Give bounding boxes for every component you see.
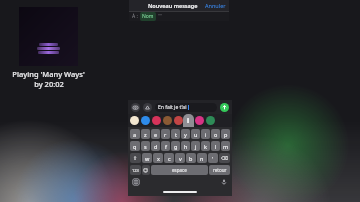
button[interactable]: Change language [132, 178, 140, 186]
staticText: o [214, 131, 218, 138]
staticText: Nom [142, 13, 154, 20]
staticText: "" [158, 13, 163, 20]
staticText: i [187, 116, 190, 126]
button[interactable]: App [130, 116, 139, 125]
staticText: Annuler [205, 2, 226, 9]
button[interactable]: c [164, 153, 174, 163]
button[interactable]: j [191, 141, 200, 151]
button[interactable]: q [130, 141, 140, 151]
button[interactable]: d [151, 141, 160, 151]
button[interactable]: Camera [131, 103, 140, 112]
staticText: retour [213, 167, 227, 173]
staticText: m [223, 143, 229, 150]
button[interactable]: À : [129, 12, 229, 21]
button[interactable]: w [142, 153, 152, 163]
staticText: l [215, 143, 217, 150]
button[interactable]: o [211, 129, 220, 139]
button[interactable]: g [171, 141, 180, 151]
button[interactable]: ' [208, 153, 218, 163]
staticText: f [165, 143, 167, 150]
staticText: En fait je t'ai [158, 104, 187, 111]
button[interactable]: En fait je t'ai [155, 103, 217, 112]
staticText: Playing 'Many Ways' [12, 69, 85, 79]
button[interactable]: ☺ [142, 165, 150, 175]
button[interactable]: ⌫ [219, 153, 230, 163]
button[interactable]: iMessage apps [183, 114, 194, 127]
staticText: p [224, 131, 228, 138]
button[interactable]: App [195, 116, 204, 125]
staticText: x [157, 155, 160, 162]
staticText: u [194, 131, 198, 138]
staticText: by 20:02 [34, 79, 64, 89]
staticText: e [154, 131, 158, 138]
button[interactable]: App [152, 116, 161, 125]
staticText: espace [172, 167, 187, 173]
button[interactable]: l [211, 141, 220, 151]
staticText: c [168, 155, 171, 162]
staticText: Nouveau message [148, 2, 198, 9]
staticText: n [200, 155, 204, 162]
button[interactable]: t [171, 129, 180, 139]
staticText: j [195, 143, 197, 150]
staticText: t [175, 131, 177, 138]
button[interactable]: App [163, 116, 172, 125]
staticText: ⌫ [221, 155, 229, 161]
button[interactable]: App Store [143, 103, 152, 112]
button[interactable]: u [191, 129, 200, 139]
button[interactable]: v [175, 153, 185, 163]
staticText: 123 [132, 168, 139, 173]
staticText: y [184, 131, 187, 138]
staticText: r [164, 131, 167, 138]
button[interactable]: f [161, 141, 170, 151]
staticText: s [144, 143, 147, 150]
button[interactable]: 123 [130, 165, 141, 175]
staticText: q [133, 143, 137, 150]
staticText: k [204, 143, 207, 150]
button[interactable]: Send [220, 103, 229, 112]
button[interactable]: Dictation [220, 178, 228, 186]
button[interactable]: e [151, 129, 160, 139]
button[interactable]: y [181, 129, 190, 139]
button[interactable]: a [130, 129, 140, 139]
button[interactable]: b [186, 153, 196, 163]
staticText: a [133, 131, 137, 138]
button[interactable]: m [221, 141, 230, 151]
staticText: À : [132, 13, 138, 20]
button[interactable]: z [141, 129, 150, 139]
staticText: ⇧ [133, 155, 138, 161]
button[interactable]: i [201, 129, 210, 139]
button[interactable]: x [153, 153, 163, 163]
staticText: w [145, 155, 150, 162]
button[interactable]: n [197, 153, 207, 163]
button[interactable]: espace [151, 165, 208, 175]
button[interactable]: App [206, 116, 215, 125]
button[interactable]: App [174, 116, 183, 125]
staticText: z [144, 131, 147, 138]
button[interactable]: retour [209, 165, 230, 175]
staticText: i [205, 131, 207, 138]
button[interactable]: App [141, 116, 150, 125]
staticText: g [174, 143, 178, 150]
button[interactable]: p [221, 129, 230, 139]
staticText: d [154, 143, 158, 150]
button[interactable]: r [161, 129, 170, 139]
button[interactable]: Playing 'Many Ways' [12, 7, 85, 89]
button[interactable]: ⇧ [130, 153, 141, 163]
button[interactable]: Annuler [202, 1, 229, 10]
button[interactable]: h [181, 141, 190, 151]
staticText: h [184, 143, 188, 150]
staticText: b [189, 155, 193, 162]
button[interactable]: k [201, 141, 210, 151]
staticText: ' [212, 155, 214, 162]
staticText: v [179, 155, 182, 162]
staticText: ☺ [143, 167, 149, 173]
button[interactable]: s [141, 141, 150, 151]
